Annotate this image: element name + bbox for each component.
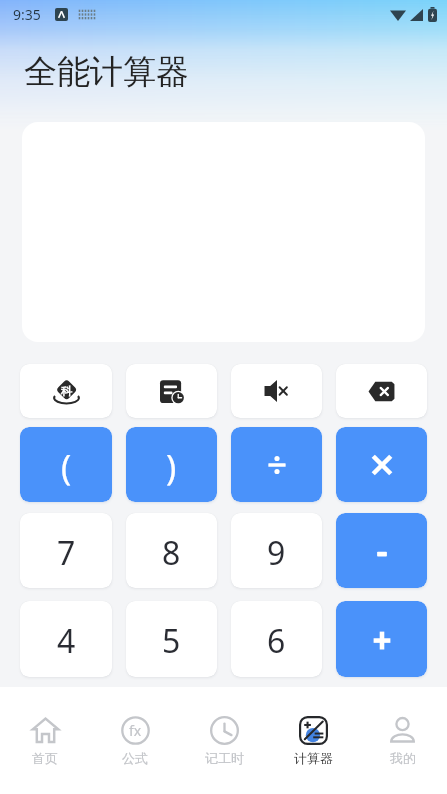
button[interactable]: 5 <box>126 601 217 677</box>
staticText: 全能计算器 <box>24 51 189 93</box>
button[interactable]: 4 <box>20 601 112 677</box>
staticText: 我的 <box>390 750 416 766</box>
staticText: 科 <box>61 384 72 398</box>
staticText: ( <box>61 444 72 490</box>
staticText: 首页 <box>32 750 58 766</box>
staticText: 计算器 <box>294 750 333 766</box>
staticText: ) <box>166 444 177 490</box>
staticText: 7 <box>57 531 76 575</box>
button[interactable]: 7 <box>20 513 112 588</box>
button[interactable]: Minus <box>336 513 427 588</box>
staticText: 8 <box>162 531 181 575</box>
staticText: 9:35 <box>13 5 41 24</box>
staticText: 公式 <box>122 750 148 766</box>
button[interactable]: Multiply <box>336 427 427 502</box>
button[interactable]: 8 <box>126 513 217 588</box>
staticText: 6 <box>267 619 286 663</box>
button[interactable]: fx <box>90 687 180 794</box>
button[interactable]: 我的 <box>358 687 447 794</box>
button[interactable]: History <box>126 364 217 418</box>
staticText: 9 <box>267 531 286 575</box>
button[interactable]: Plus <box>336 601 427 677</box>
button[interactable]: Scientific mode <box>20 364 112 418</box>
button[interactable]: 首页 <box>0 687 90 794</box>
button[interactable]: ( <box>20 427 112 502</box>
button[interactable]: Mute <box>231 364 322 418</box>
staticText: 5 <box>162 619 181 663</box>
button[interactable]: 记工时 <box>180 687 269 794</box>
button[interactable]: Divide <box>231 427 322 502</box>
button[interactable]: ) <box>126 427 217 502</box>
button[interactable]: 9 <box>231 513 322 588</box>
staticText: fx <box>129 721 142 740</box>
staticText: 4 <box>57 619 76 663</box>
button[interactable]: 计算器 <box>269 687 358 794</box>
staticText: 记工时 <box>205 750 244 766</box>
button[interactable]: Backspace <box>336 364 427 418</box>
button[interactable]: 6 <box>231 601 322 677</box>
